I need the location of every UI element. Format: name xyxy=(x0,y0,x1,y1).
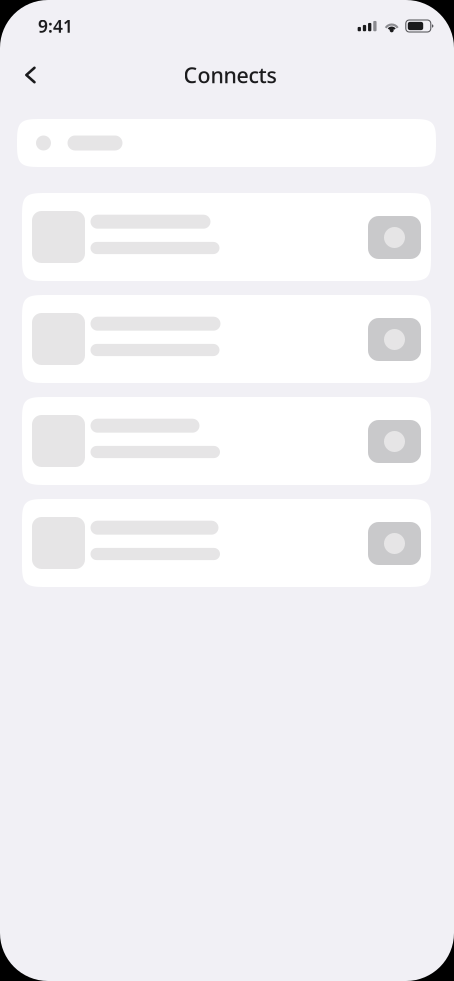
staticText: Connects xyxy=(183,61,276,89)
button[interactable]: Connect xyxy=(368,216,421,259)
button[interactable]: Connect xyxy=(368,420,421,463)
button[interactable]: Back xyxy=(7,52,53,98)
staticText: 9:41 xyxy=(38,14,73,37)
button[interactable]: Connect xyxy=(368,318,421,361)
button[interactable]: Connect xyxy=(368,522,421,565)
button[interactable]: Search xyxy=(17,119,436,167)
